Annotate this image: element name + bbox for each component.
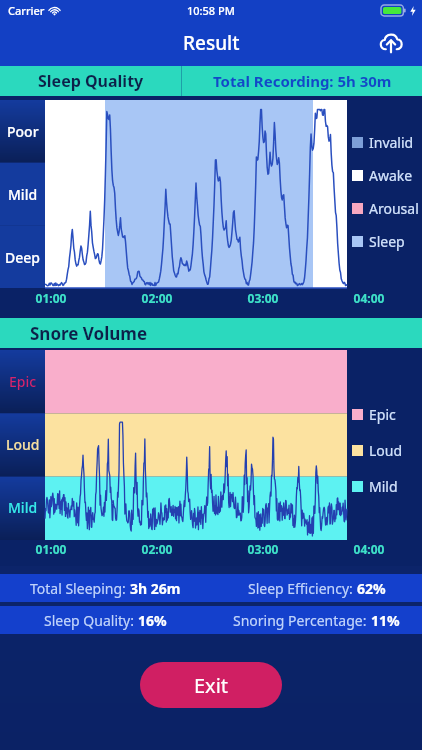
staticText: Epic [369, 405, 396, 424]
staticText: Mild [8, 185, 38, 204]
button[interactable]: Upload [374, 26, 408, 60]
staticText: 04:00 [346, 290, 392, 306]
staticText: Deep [5, 248, 40, 267]
staticText: Total Recording: 5h 30m [213, 71, 392, 91]
staticText: 11% [371, 611, 400, 630]
staticText: 02:00 [134, 541, 180, 557]
staticText: 01:00 [28, 290, 74, 306]
staticText: Snoring Percentage: [233, 611, 371, 630]
staticText: Invalid [369, 133, 414, 152]
staticText: Awake [369, 166, 413, 185]
staticText: Loud [6, 435, 40, 454]
staticText: 3h 26m [130, 579, 181, 598]
staticText: Result [183, 30, 240, 56]
button[interactable]: Total Recording: 5h 30m [182, 66, 422, 96]
staticText: Carrier [8, 3, 45, 18]
staticText: Loud [369, 441, 403, 460]
staticText: Mild [8, 498, 38, 517]
button[interactable]: Exit [140, 662, 282, 708]
staticText: Snore Volume [30, 322, 148, 345]
staticText: 03:00 [240, 541, 286, 557]
staticText: 01:00 [28, 541, 74, 557]
staticText: Epic [9, 372, 37, 391]
button[interactable]: Sleep Quality: [0, 606, 422, 634]
staticText: Arousal [369, 199, 419, 218]
staticText: Mild [369, 477, 398, 496]
button[interactable]: Snore Volume [0, 318, 422, 348]
staticText: Exit [194, 672, 229, 699]
staticText: Sleep Quality: [44, 611, 138, 630]
staticText: 03:00 [240, 290, 286, 306]
button[interactable]: Sleep Quality [0, 66, 181, 96]
staticText: 10:58 PM [187, 3, 235, 18]
staticText: 02:00 [134, 290, 180, 306]
staticText: Sleep Efficiency: [248, 579, 357, 598]
staticText: Sleep [369, 232, 405, 251]
staticText: 62% [357, 579, 386, 598]
staticText: Total Sleeping: [30, 579, 130, 598]
staticText: Poor [7, 122, 39, 141]
staticText: 16% [138, 611, 167, 630]
staticText: 04:00 [346, 541, 392, 557]
staticText: Sleep Quality [38, 70, 144, 92]
button[interactable]: Total Sleeping: [0, 574, 422, 602]
